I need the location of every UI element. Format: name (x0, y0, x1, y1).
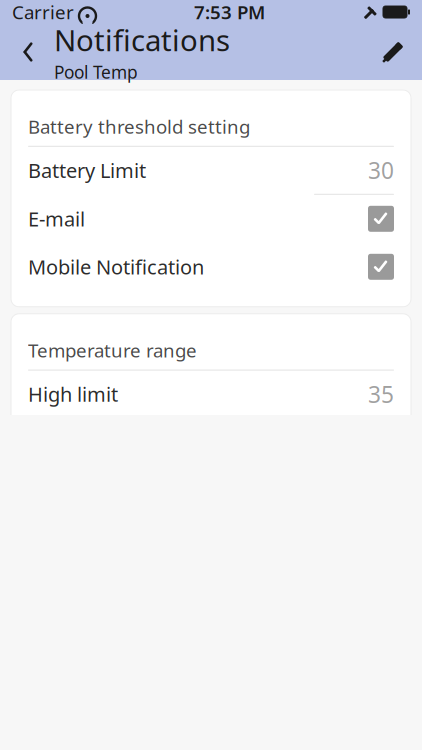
staticText: Carrier (12, 0, 74, 24)
button[interactable]: High limit (11, 371, 411, 419)
staticText: 35 (368, 379, 394, 409)
button[interactable]: Back (6, 24, 50, 80)
button[interactable]: E-mail (11, 195, 411, 243)
staticText: Battery Limit (28, 157, 146, 184)
staticText: Notifications (54, 20, 230, 59)
staticText: Pool Temp (54, 60, 138, 83)
staticText: 7:53 PM (194, 0, 265, 24)
staticText: 30 (368, 155, 394, 185)
staticText: High limit (28, 381, 118, 407)
staticText: E-mail (28, 205, 85, 232)
button[interactable]: Battery Limit (11, 147, 411, 195)
button[interactable]: Edit (370, 24, 416, 80)
button[interactable]: Mobile Notification (11, 243, 411, 291)
staticText: Mobile Notification (28, 253, 204, 280)
staticText: Battery threshold setting (28, 114, 250, 139)
staticText: Temperature range (28, 338, 197, 363)
